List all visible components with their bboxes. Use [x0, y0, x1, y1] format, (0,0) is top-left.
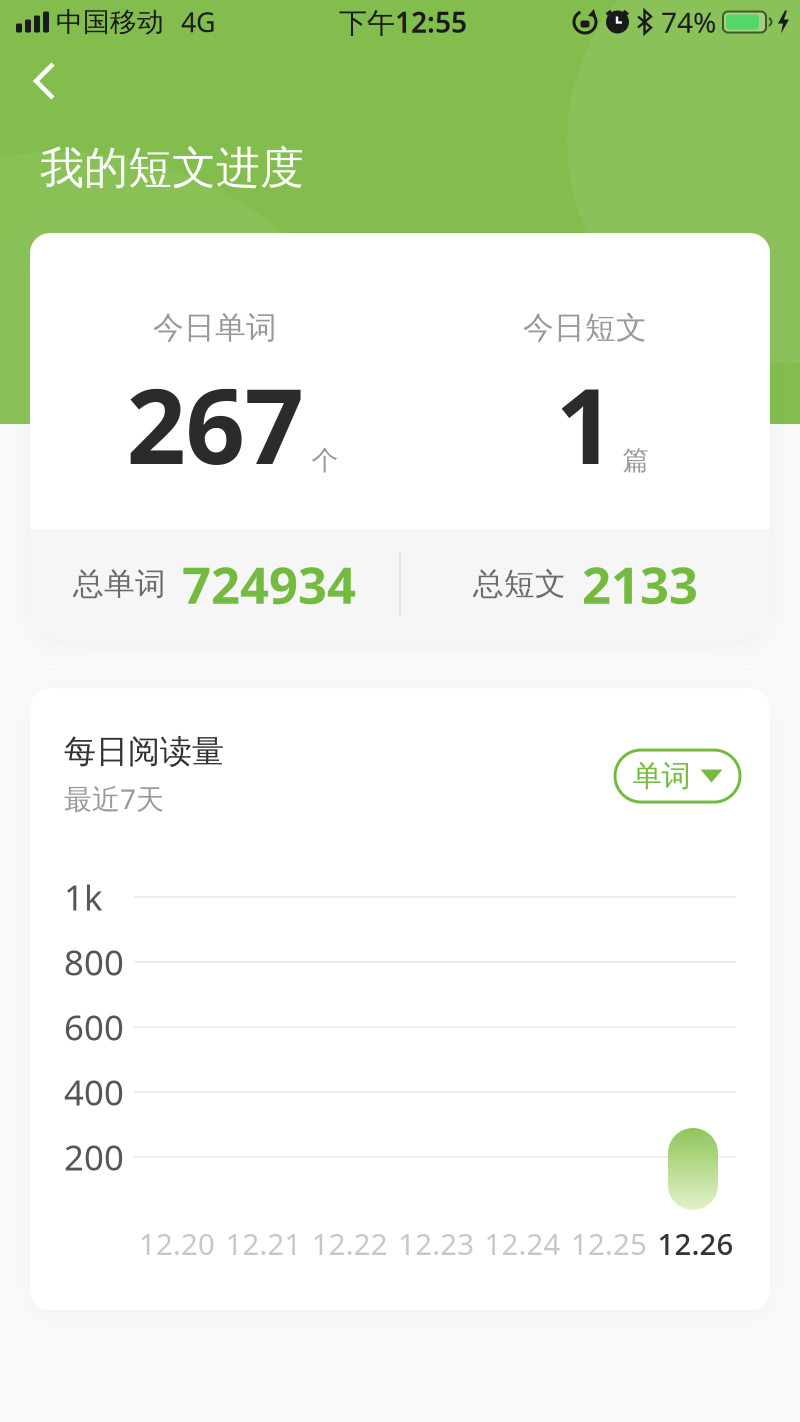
staticText: 1k: [64, 874, 103, 920]
staticText: 200: [64, 1134, 124, 1180]
staticText: 600: [64, 1004, 124, 1050]
staticText: 最近7天: [64, 780, 164, 817]
staticText: 12.21: [225, 1224, 301, 1263]
staticText: 总短文: [473, 565, 566, 603]
staticText: 今日单词: [153, 309, 277, 347]
staticText: 每日阅读量: [64, 732, 224, 771]
staticText: 12.20: [139, 1224, 215, 1263]
staticText: 12.26: [657, 1224, 733, 1263]
staticText: 12.25: [571, 1224, 647, 1263]
staticText: 12.24: [485, 1224, 561, 1263]
staticText: 74%: [661, 3, 716, 41]
button[interactable]: 单词: [615, 750, 740, 802]
staticText: 267: [126, 355, 303, 493]
staticText: 12.23: [398, 1224, 474, 1263]
staticText: 中国移动: [56, 6, 164, 38]
staticText: 1: [555, 355, 614, 493]
staticText: 个: [311, 444, 338, 477]
staticText: 我的短文进度: [40, 141, 304, 195]
staticText: 724934: [182, 550, 356, 618]
staticText: 400: [64, 1069, 124, 1115]
staticText: 下午12:55: [339, 3, 467, 41]
staticText: 今日短文: [523, 309, 647, 347]
staticText: 总单词: [73, 565, 166, 603]
button[interactable]: Back: [34, 64, 55, 98]
staticText: 12.22: [312, 1224, 388, 1263]
staticText: 篇: [622, 444, 649, 477]
staticText: 单词: [632, 758, 690, 794]
staticText: 2133: [582, 550, 698, 618]
staticText: 800: [64, 939, 124, 985]
staticText: 4G: [181, 4, 215, 40]
